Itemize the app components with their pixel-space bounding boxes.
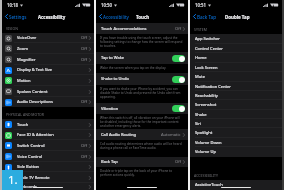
staticText: Shake <box>195 112 207 118</box>
button[interactable]: Control Center <box>190 44 282 53</box>
staticText: 1. <box>8 172 18 188</box>
button[interactable]: Volume Up <box>190 147 282 157</box>
button[interactable]: Siri <box>190 119 282 128</box>
button[interactable]: Spoken Content <box>2 86 94 97</box>
button[interactable]: Touch Accommodations <box>96 23 188 34</box>
staticText: Back Tap <box>197 14 217 20</box>
button[interactable]: Volume Down <box>190 138 282 147</box>
button[interactable]: Home <box>190 53 282 63</box>
staticText: Off <box>81 143 87 149</box>
staticText: Off <box>175 26 181 32</box>
button[interactable]: Settings <box>2 12 29 21</box>
staticText: SYSTEM <box>194 27 207 32</box>
button[interactable]: Back Tap <box>190 12 219 21</box>
staticText: Tap to Wake <box>101 55 125 61</box>
staticText: Switch Control <box>17 143 45 149</box>
staticText: If you have trouble using the touch scre… <box>100 36 184 48</box>
staticText: Accessibility <box>38 14 66 20</box>
staticText: Zoom <box>17 46 28 52</box>
staticText: Touch Accommodations <box>101 26 147 32</box>
staticText: Vibration <box>101 106 119 112</box>
staticText: Call Audio Routing <box>101 132 137 138</box>
staticText: Double Tap <box>225 14 250 20</box>
button[interactable]: Vibration <box>96 103 188 114</box>
staticText: 10:51 <box>195 2 207 8</box>
button[interactable]: Screenshot <box>190 100 282 110</box>
staticText: Touch <box>17 122 29 128</box>
button[interactable]: 1. <box>2 170 23 190</box>
staticText: Face ID & Attention <box>17 132 54 138</box>
button[interactable]: Side Button <box>2 162 94 172</box>
button[interactable]: Audio Descriptions <box>2 97 94 107</box>
staticText: Volume Down <box>195 140 222 146</box>
staticText: Off <box>81 99 87 105</box>
staticText: Control Center <box>195 46 223 52</box>
staticText: Home <box>195 55 207 61</box>
staticText: Accessibility <box>103 14 129 20</box>
staticText: AssistiveTouch <box>195 182 223 188</box>
button[interactable]: VoiceOver <box>2 33 94 43</box>
button[interactable]: Accessibility <box>96 12 131 21</box>
staticText: Off <box>81 46 87 52</box>
staticText: PHYSICAL AND MOTOR <box>6 112 44 117</box>
button[interactable]: Shake <box>190 110 282 119</box>
button[interactable]: Shake to Undo <box>96 73 188 85</box>
staticText: Motion <box>17 78 31 84</box>
staticText: Notification Center <box>195 84 231 90</box>
button[interactable]: Mute <box>190 72 282 82</box>
staticText: Display & Text Size <box>17 67 53 73</box>
staticText: Magnifier <box>17 57 36 63</box>
staticText: Mute <box>195 74 205 80</box>
button[interactable]: Touch <box>2 119 94 130</box>
button[interactable]: Switch Control <box>2 140 94 151</box>
button[interactable]: App Switcher <box>190 34 282 44</box>
button[interactable]: Magnifier <box>2 54 94 65</box>
button[interactable]: Reachability <box>190 91 282 100</box>
staticText: Settings <box>9 14 27 20</box>
staticText: Side Button <box>17 164 40 170</box>
staticText: Off <box>81 57 87 63</box>
staticText: Wake the screen when you tap on the disp… <box>100 66 167 70</box>
staticText: Off <box>175 159 181 165</box>
button[interactable]: Motion <box>2 75 94 86</box>
staticText: When this switch is off, all vibration o… <box>100 116 184 128</box>
button[interactable]: Display & Text Size <box>2 65 94 75</box>
staticText: Siri <box>195 121 201 127</box>
button[interactable]: Notification Center <box>190 82 282 91</box>
staticText: Touch <box>136 14 150 20</box>
button[interactable]: Tap to Wake <box>96 52 188 64</box>
staticText: VISION <box>6 26 18 31</box>
button[interactable]: Lock Screen <box>190 63 282 72</box>
button[interactable]: Back Tap <box>96 157 188 167</box>
staticText: Shake to Undo <box>101 76 129 82</box>
button[interactable]: Apple TV Remote <box>2 172 94 183</box>
button[interactable]: Voice Control <box>2 151 94 162</box>
staticText: Keyboards <box>17 184 37 190</box>
staticText: Screenshot <box>195 102 217 108</box>
staticText: Off <box>81 35 87 41</box>
staticText: Call audio routing determines where audi… <box>100 142 184 150</box>
button[interactable]: Call Audio Routing <box>96 129 188 140</box>
staticText: ACCESSIBILITY <box>194 173 218 178</box>
staticText: Off <box>81 154 87 160</box>
staticText: Audio Descriptions <box>17 99 53 105</box>
staticText: VoiceOver <box>17 35 37 41</box>
staticText: 10:50 <box>101 2 113 8</box>
button[interactable]: AssistiveTouch <box>190 180 282 190</box>
staticText: Spoken Content <box>17 89 48 95</box>
staticText: Spotlight <box>195 130 213 136</box>
button[interactable]: Zoom <box>2 43 94 54</box>
staticText: Reachability <box>195 93 218 99</box>
staticText: Double or triple tap on the back of your… <box>100 169 184 177</box>
button[interactable]: Face ID & Attention <box>2 130 94 140</box>
staticText: Lock Screen <box>195 65 218 71</box>
staticText: Voice Control <box>17 154 43 160</box>
staticText: Apple TV Remote <box>17 175 50 181</box>
button[interactable]: Spotlight <box>190 128 282 138</box>
staticText: 10:18 <box>7 2 19 8</box>
button[interactable]: Keyboards <box>2 183 94 190</box>
staticText: If you want to shake your iPhone by acci… <box>100 87 184 99</box>
staticText: Volume Up <box>195 149 216 155</box>
staticText: Automatic <box>161 132 181 138</box>
staticText: Back Tap <box>101 159 118 165</box>
